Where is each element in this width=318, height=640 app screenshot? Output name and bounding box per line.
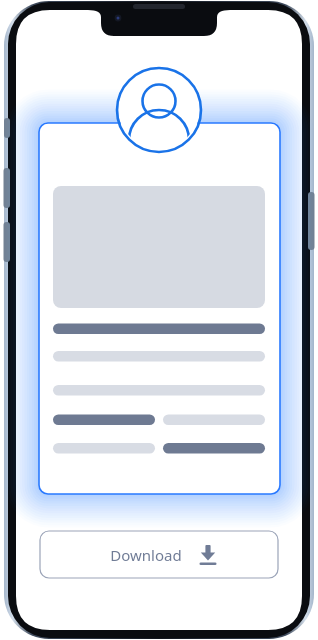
staticText: Download	[110, 545, 182, 565]
button[interactable]: Download	[40, 531, 278, 578]
button[interactable]	[39, 123, 280, 494]
button[interactable]: Profile avatar	[117, 68, 201, 152]
